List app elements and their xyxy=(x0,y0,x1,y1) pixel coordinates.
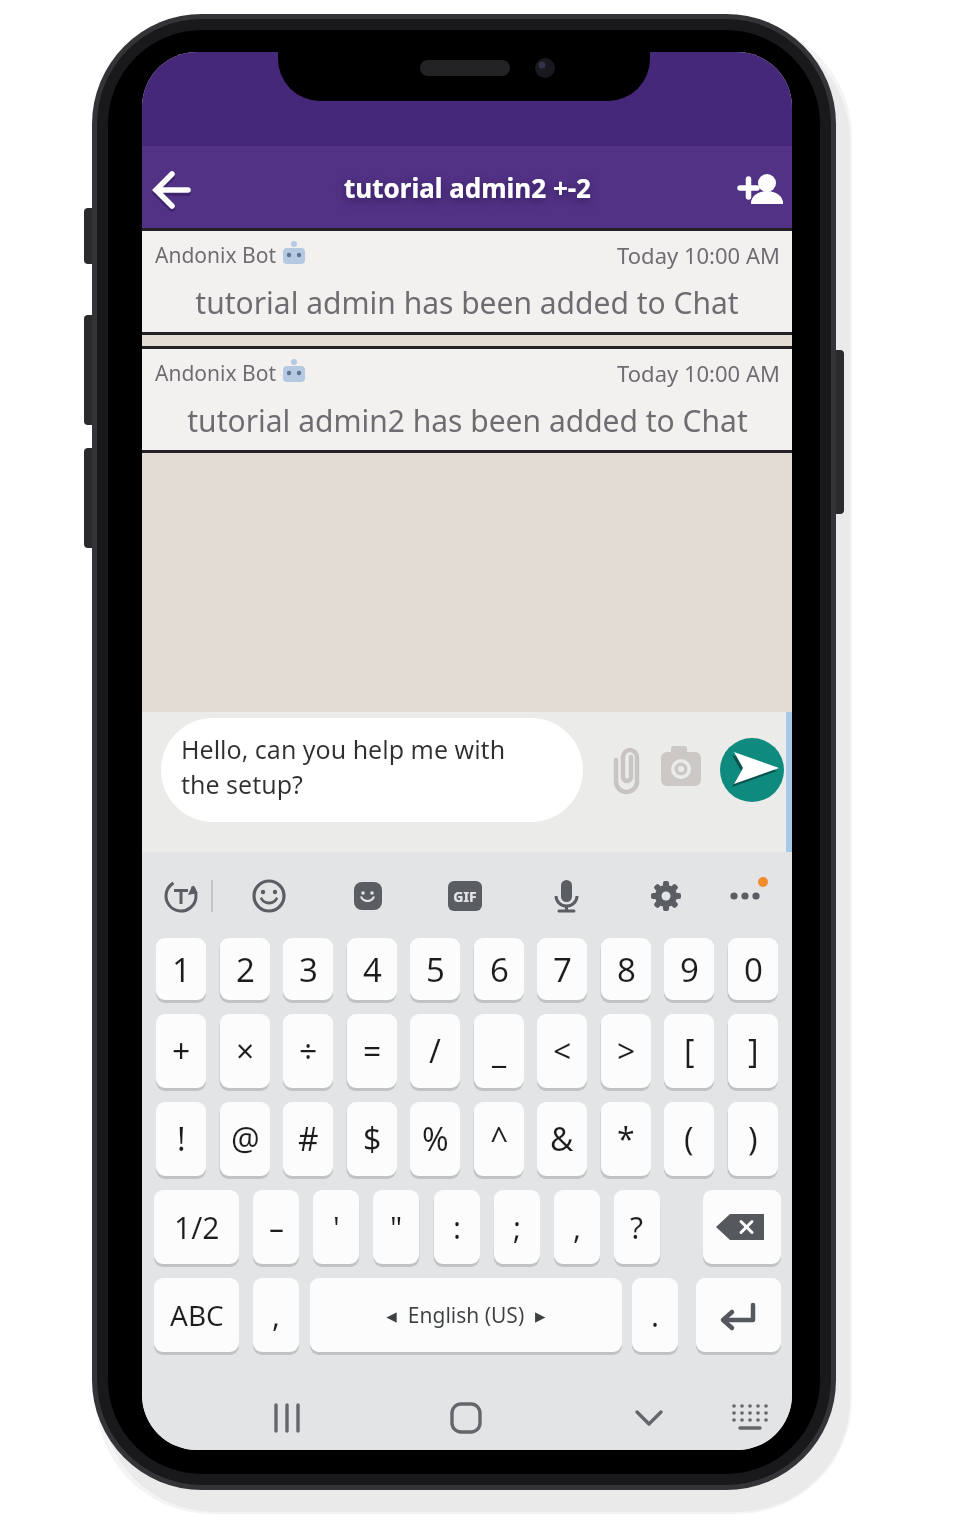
staticText: 5 xyxy=(426,947,445,992)
staticText: Today 10:00 AM xyxy=(617,358,780,388)
staticText: & xyxy=(550,1117,574,1161)
button[interactable]: 3 xyxy=(283,938,333,1000)
button[interactable]: ABC xyxy=(154,1278,239,1352)
button[interactable]: + xyxy=(156,1014,206,1088)
button[interactable] xyxy=(310,1278,622,1352)
button[interactable] xyxy=(344,872,392,920)
staticText: : xyxy=(453,1207,462,1248)
button[interactable] xyxy=(150,168,196,214)
button[interactable]: [ xyxy=(664,1014,714,1088)
staticText: 7 xyxy=(553,947,572,992)
staticText: = xyxy=(363,1029,382,1073)
button[interactable]: , xyxy=(554,1190,600,1264)
staticText: tutorial admin2 +-2 xyxy=(344,170,591,205)
button[interactable]: ] xyxy=(728,1014,778,1088)
button[interactable]: . xyxy=(632,1278,678,1352)
staticText: 6 xyxy=(490,947,509,992)
button[interactable] xyxy=(623,1392,675,1444)
staticText: / xyxy=(429,1029,441,1073)
staticText: _ xyxy=(492,1029,507,1073)
button[interactable]: ÷ xyxy=(283,1014,333,1088)
button[interactable]: ( xyxy=(664,1102,714,1176)
staticText: 4 xyxy=(363,947,382,992)
button[interactable]: # xyxy=(283,1102,333,1176)
button[interactable] xyxy=(656,746,704,792)
button[interactable]: * xyxy=(601,1102,651,1176)
button[interactable]: ? xyxy=(614,1190,660,1264)
staticText: Today 10:00 AM xyxy=(617,240,780,270)
button[interactable]: × xyxy=(220,1014,270,1088)
button[interactable]: ^ xyxy=(474,1102,524,1176)
button[interactable]: ) xyxy=(728,1102,778,1176)
staticText: GIF xyxy=(453,887,477,906)
staticText: ; xyxy=(513,1207,522,1248)
button[interactable]: 2 xyxy=(220,938,270,1000)
staticText: % xyxy=(422,1117,449,1161)
staticText: ^ xyxy=(490,1117,509,1161)
staticText: < xyxy=(553,1029,572,1073)
button[interactable] xyxy=(440,1392,492,1444)
staticText: " xyxy=(390,1207,403,1248)
button[interactable]: 1 xyxy=(156,938,206,1000)
button[interactable] xyxy=(157,872,205,920)
staticText: 1/2 xyxy=(174,1207,220,1248)
button[interactable]: 4 xyxy=(347,938,397,1000)
button[interactable] xyxy=(703,1190,781,1264)
button[interactable] xyxy=(245,872,293,920)
button[interactable] xyxy=(642,872,690,920)
button[interactable]: , xyxy=(253,1278,299,1352)
staticText: ] xyxy=(748,1029,759,1073)
button[interactable] xyxy=(724,1392,776,1444)
button[interactable]: 0 xyxy=(728,938,778,1000)
button[interactable]: 7 xyxy=(537,938,587,1000)
button[interactable]: – xyxy=(253,1190,299,1264)
button[interactable] xyxy=(606,744,648,796)
button[interactable] xyxy=(724,872,772,920)
button[interactable] xyxy=(696,1278,781,1352)
staticText: ' xyxy=(333,1207,340,1248)
staticText: ) xyxy=(748,1117,758,1161)
button[interactable]: ; xyxy=(494,1190,540,1264)
button[interactable]: $ xyxy=(347,1102,397,1176)
button[interactable] xyxy=(737,168,789,214)
button[interactable]: / xyxy=(410,1014,460,1088)
staticText: 2 xyxy=(236,947,255,992)
button[interactable]: 6 xyxy=(474,938,524,1000)
staticText: 8 xyxy=(617,947,636,992)
staticText: + xyxy=(172,1029,191,1073)
staticText: × xyxy=(236,1029,255,1073)
staticText: ABC xyxy=(170,1296,224,1334)
button[interactable] xyxy=(542,872,590,920)
staticText: 9 xyxy=(680,947,699,992)
staticText: ÷ xyxy=(299,1029,318,1073)
staticText: ? xyxy=(630,1207,644,1248)
button[interactable]: : xyxy=(434,1190,480,1264)
staticText: . xyxy=(651,1295,660,1336)
button[interactable] xyxy=(441,872,489,920)
button[interactable]: % xyxy=(410,1102,460,1176)
button[interactable]: Hello, can you help me with the setup? xyxy=(161,718,583,822)
button[interactable]: @ xyxy=(220,1102,270,1176)
button[interactable]: < xyxy=(537,1014,587,1088)
staticText: ! xyxy=(177,1117,186,1161)
button[interactable]: = xyxy=(347,1014,397,1088)
button[interactable]: ' xyxy=(313,1190,359,1264)
button[interactable]: > xyxy=(601,1014,651,1088)
button[interactable]: 9 xyxy=(664,938,714,1000)
button[interactable]: 5 xyxy=(410,938,460,1000)
button[interactable] xyxy=(261,1392,313,1444)
staticText: # xyxy=(298,1117,319,1161)
button[interactable]: 1/2 xyxy=(154,1190,239,1264)
button[interactable]: 8 xyxy=(601,938,651,1000)
staticText: @ xyxy=(231,1117,260,1161)
staticText: Hello, can you help me with the setup? xyxy=(181,732,506,802)
button[interactable] xyxy=(720,738,784,802)
button[interactable]: ! xyxy=(156,1102,206,1176)
staticText: , xyxy=(272,1295,281,1336)
staticText: 3 xyxy=(299,947,318,992)
button[interactable]: & xyxy=(537,1102,587,1176)
button[interactable]: _ xyxy=(474,1014,524,1088)
staticText: ◂ English (US) ▸ xyxy=(386,1301,546,1330)
staticText: tutorial admin has been added to Chat xyxy=(195,282,739,323)
button[interactable]: " xyxy=(373,1190,419,1264)
